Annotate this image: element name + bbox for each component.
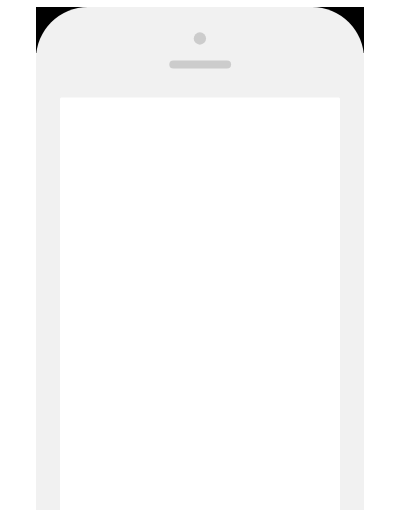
- button[interactable]: Earpiece and front camera: [153, 21, 247, 69]
